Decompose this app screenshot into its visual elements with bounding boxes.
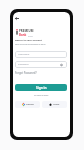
button[interactable]: Google [15,101,40,108]
button[interactable]: Forgot Password? [15,71,37,75]
button[interactable]: Apple [42,101,67,108]
staticText: Username [18,53,30,56]
staticText: Apple [53,103,60,106]
staticText: Bank [19,33,27,37]
button[interactable]: Show password [60,63,63,66]
staticText: Sign in [36,86,47,90]
staticText: PREMIUM [19,29,34,33]
button[interactable]: Back [13,15,20,22]
button[interactable]: Username [15,51,67,58]
staticText: Sign in to your account [15,38,42,41]
staticText: Enter your email and password to sign in [15,43,46,45]
button[interactable]: Password [15,61,67,68]
button[interactable]: Sign in [15,84,67,91]
staticText: Google [26,103,34,106]
staticText: group [28,35,33,37]
staticText: Password [18,63,29,66]
staticText: Or sign in with [34,94,49,97]
